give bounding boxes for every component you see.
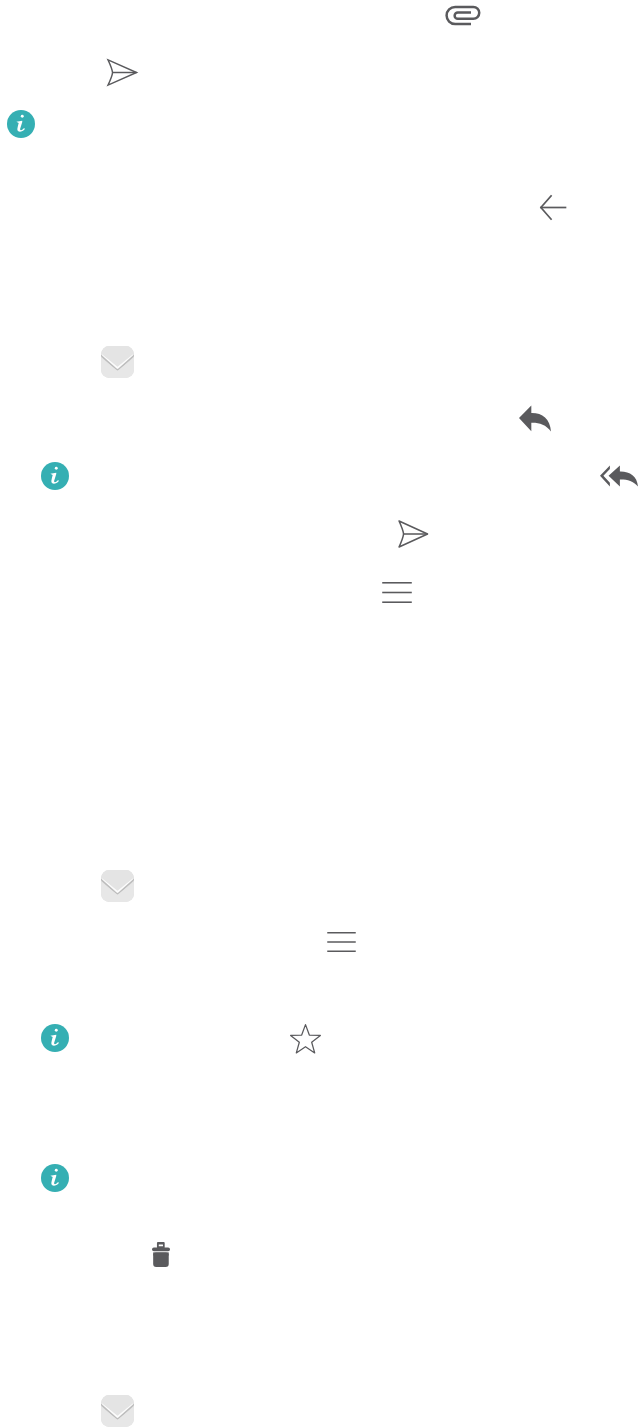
button[interactable]: Favorite [290, 1024, 321, 1054]
button[interactable]: Info [41, 1024, 69, 1052]
button[interactable]: Send [398, 520, 428, 548]
button[interactable]: Menu [328, 932, 355, 952]
button[interactable]: Delete [152, 1242, 170, 1267]
button[interactable]: Reply [519, 405, 551, 432]
button[interactable]: Menu [383, 582, 411, 603]
button[interactable]: Reply all [600, 465, 638, 487]
button[interactable]: Attach [445, 5, 481, 26]
button[interactable]: Mail [101, 1395, 134, 1427]
button[interactable]: Info [41, 462, 69, 490]
button[interactable]: Send [107, 59, 137, 86]
button[interactable]: Info [7, 110, 35, 138]
button[interactable]: Info [41, 1164, 69, 1192]
button[interactable]: Mail [101, 346, 134, 378]
button[interactable]: Back [540, 195, 566, 220]
button[interactable]: Mail [101, 870, 134, 902]
